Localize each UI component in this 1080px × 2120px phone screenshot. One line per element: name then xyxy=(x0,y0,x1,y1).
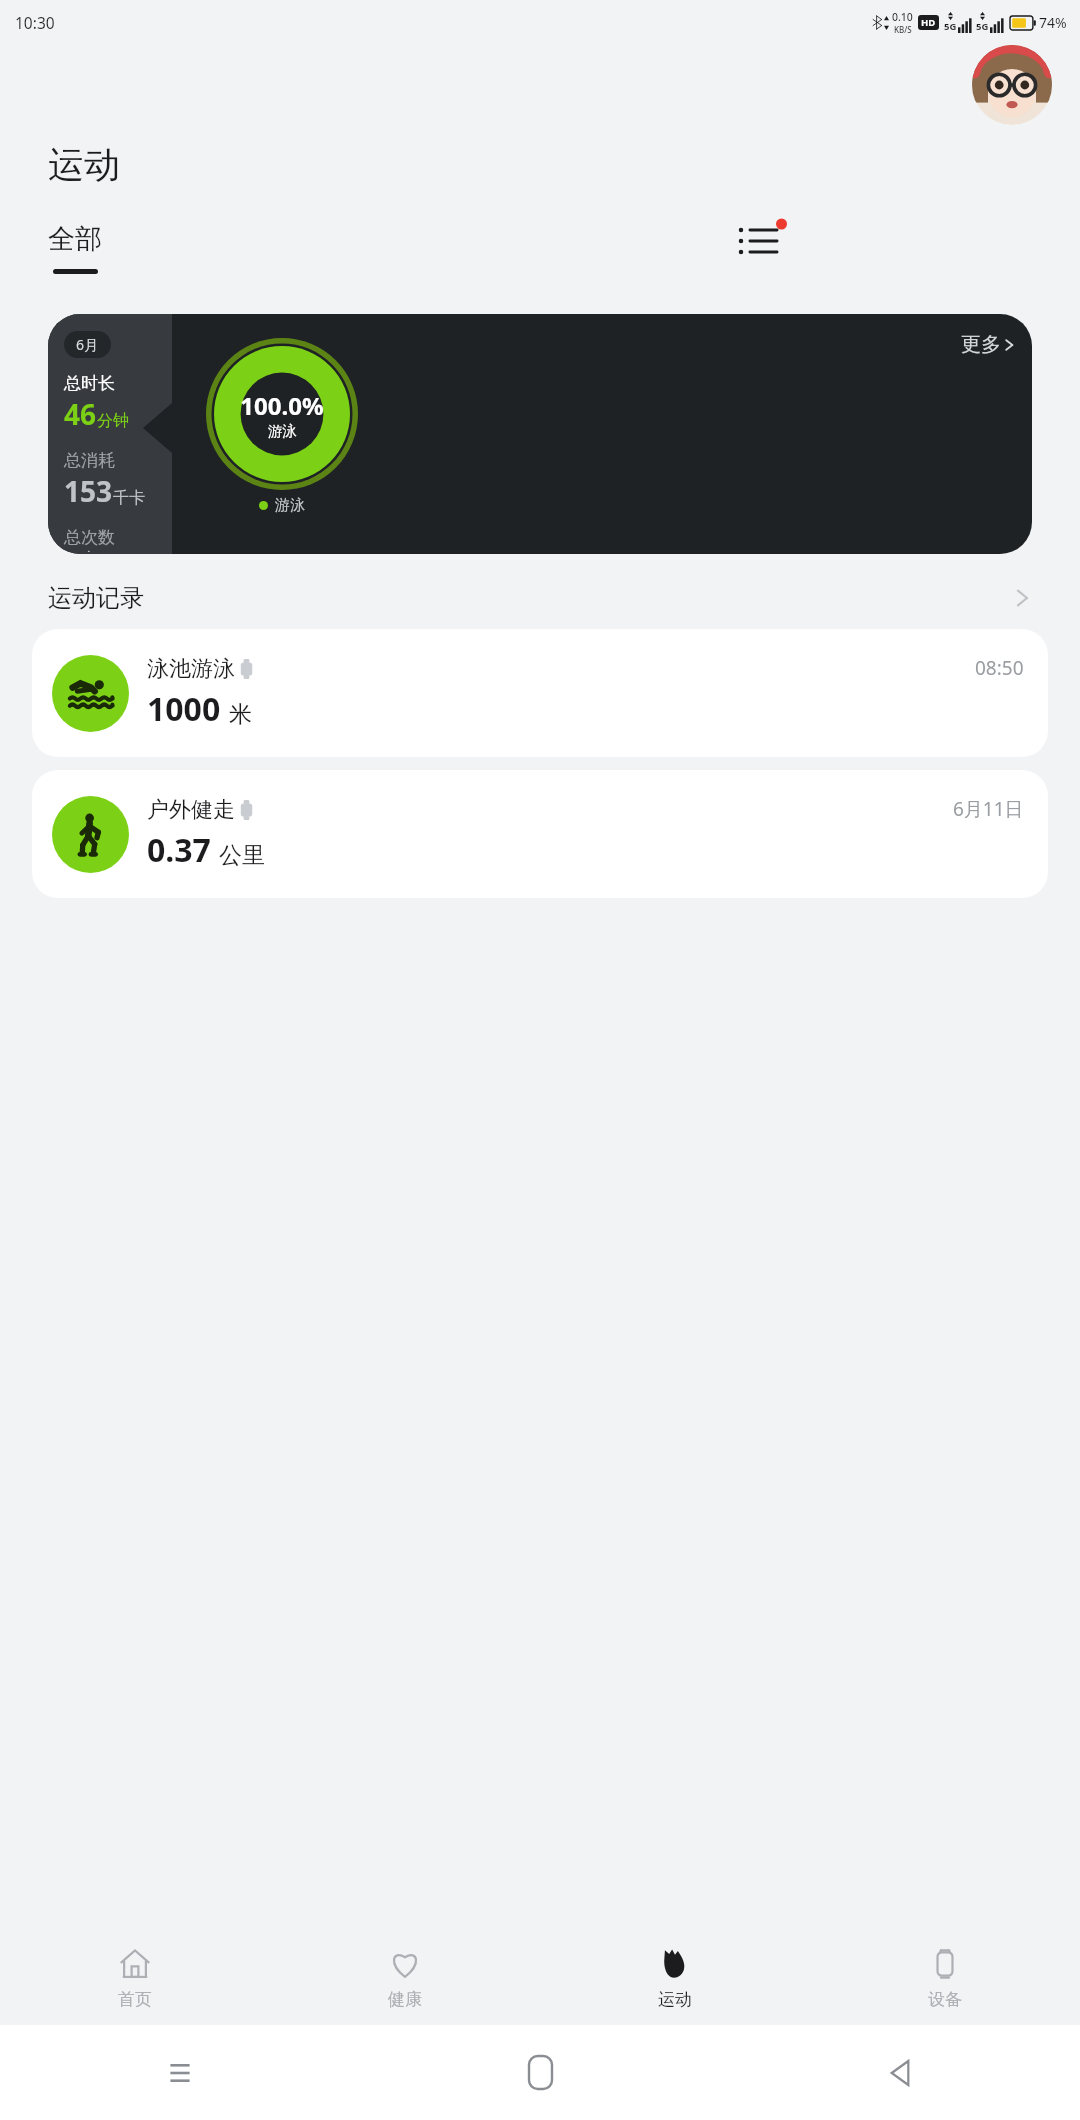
staticText: 1 xyxy=(64,549,81,554)
staticText: 153 xyxy=(64,472,113,510)
staticText: 次 xyxy=(81,549,97,552)
staticText: 运动 xyxy=(658,1989,692,2010)
staticText: 游泳 xyxy=(275,496,305,515)
button[interactable]: 全部 xyxy=(48,222,102,274)
staticText: 74% xyxy=(1039,13,1067,32)
staticText: 分钟 xyxy=(97,411,129,431)
staticText: 总时长 xyxy=(64,373,115,394)
staticText: HD xyxy=(921,16,936,29)
staticText: 6月11日 xyxy=(953,796,1024,822)
button[interactable]: 户外健走 xyxy=(32,770,1048,898)
button[interactable]: Home xyxy=(360,2025,720,2120)
staticText: 更多 xyxy=(961,332,1001,357)
staticText: 游泳 xyxy=(268,422,297,440)
button[interactable]: 6月 xyxy=(48,314,1032,554)
staticText: 1000 xyxy=(147,687,221,731)
staticText: 泳池游泳 xyxy=(147,655,235,683)
button[interactable]: 运动记录 xyxy=(48,582,1032,614)
staticText: 健康 xyxy=(388,1989,422,2010)
staticText: 总次数 xyxy=(64,527,115,548)
staticText: 5G xyxy=(944,20,957,33)
staticText: 全部 xyxy=(48,222,102,256)
button[interactable]: 更多 xyxy=(961,332,1016,357)
staticText: 100.0% xyxy=(240,389,324,422)
button[interactable]: Back xyxy=(720,2025,1080,2120)
button[interactable]: 运动 xyxy=(540,1928,810,2025)
staticText: 46 xyxy=(64,395,97,433)
staticText: 0.37 xyxy=(147,828,211,872)
staticText: KB/S xyxy=(894,24,912,35)
staticText: 运动 xyxy=(48,142,120,187)
button[interactable]: 首页 xyxy=(0,1928,270,2025)
staticText: 设备 xyxy=(928,1989,962,2010)
staticText: 运动记录 xyxy=(48,583,144,613)
button[interactable]: Profile xyxy=(972,45,1052,125)
staticText: 首页 xyxy=(118,1989,152,2010)
staticText: 6月 xyxy=(76,335,99,354)
button[interactable]: 筛选列表 xyxy=(735,217,785,267)
button[interactable]: 健康 xyxy=(270,1928,540,2025)
staticText: 总消耗 xyxy=(64,450,115,471)
staticText: 户外健走 xyxy=(147,796,235,824)
button[interactable]: Recents xyxy=(0,2025,360,2120)
staticText: 08:50 xyxy=(975,655,1024,681)
staticText: 0.10 xyxy=(892,10,913,24)
staticText: 10:30 xyxy=(15,12,55,33)
staticText: 5G xyxy=(976,20,989,33)
button[interactable]: 设备 xyxy=(810,1928,1080,2025)
button[interactable]: 泳池游泳 xyxy=(32,629,1048,757)
staticText: 米 xyxy=(229,700,252,729)
staticText: 公里 xyxy=(219,841,265,870)
staticText: 千卡 xyxy=(113,488,145,508)
